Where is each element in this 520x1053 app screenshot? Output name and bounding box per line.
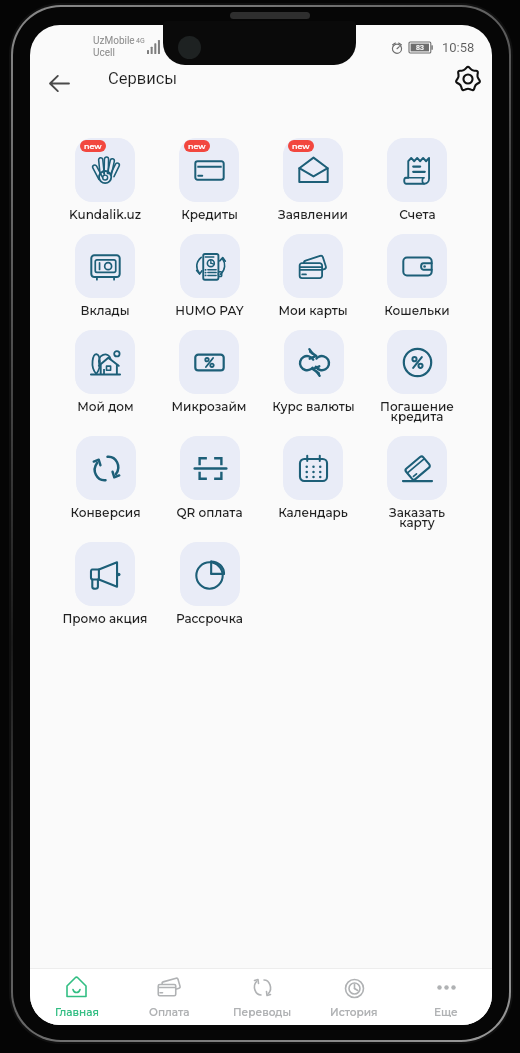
staticText: 4G bbox=[136, 37, 145, 45]
staticText: Микрозайм bbox=[171, 399, 247, 414]
button[interactable]: new bbox=[278, 138, 348, 222]
staticText: QR оплата bbox=[176, 505, 243, 520]
button[interactable]: История bbox=[308, 969, 400, 1025]
button[interactable]: Конверсия bbox=[70, 436, 141, 520]
button[interactable]: new bbox=[69, 138, 141, 222]
staticText: Заявлении bbox=[278, 207, 348, 222]
staticText: new bbox=[188, 141, 206, 151]
button[interactable]: Settings bbox=[451, 62, 485, 96]
button[interactable]: QR оплата bbox=[176, 436, 243, 520]
staticText: Kundalik.uz bbox=[69, 207, 141, 222]
button[interactable]: HUMO PAY bbox=[175, 234, 244, 318]
button[interactable]: Мой дом bbox=[75, 330, 135, 414]
staticText: Кошельки bbox=[384, 303, 450, 318]
button[interactable]: Оплата bbox=[123, 969, 216, 1025]
staticText: Главная bbox=[55, 1006, 99, 1019]
button[interactable]: Курс валюты bbox=[272, 330, 355, 414]
staticText: 10:58 bbox=[442, 40, 475, 55]
button[interactable]: Рассрочка bbox=[176, 542, 243, 626]
staticText: 83 bbox=[416, 44, 424, 52]
staticText: Промо акция bbox=[62, 611, 148, 626]
button[interactable]: Back bbox=[41, 65, 77, 101]
button[interactable]: new bbox=[179, 138, 239, 222]
staticText: UzMobile bbox=[93, 35, 135, 47]
button[interactable]: Микрозайм bbox=[171, 330, 247, 414]
staticText: Мой дом bbox=[77, 399, 134, 414]
button[interactable]: Заказать карту bbox=[387, 436, 447, 530]
staticText: Погашение кредита bbox=[380, 399, 454, 424]
staticText: Календарь bbox=[278, 505, 348, 520]
staticText: Оплата bbox=[149, 1006, 190, 1019]
staticText: Вклады bbox=[80, 303, 130, 318]
button[interactable]: Еще bbox=[400, 969, 492, 1025]
staticText: Счета bbox=[399, 207, 436, 222]
staticText: Курс валюты bbox=[272, 399, 355, 414]
staticText: Ucell bbox=[93, 47, 115, 59]
staticText: HUMO PAY bbox=[175, 303, 244, 318]
button[interactable]: Погашение кредита bbox=[380, 330, 454, 424]
staticText: Рассрочка bbox=[176, 611, 243, 626]
staticText: new bbox=[84, 141, 102, 151]
staticText: Конверсия bbox=[70, 505, 141, 520]
staticText: Кредиты bbox=[181, 207, 238, 222]
button[interactable]: Главная bbox=[30, 969, 123, 1025]
button[interactable]: Кошельки bbox=[384, 234, 450, 318]
staticText: Переводы bbox=[233, 1006, 292, 1019]
button[interactable]: Вклады bbox=[75, 234, 135, 318]
staticText: Еще bbox=[434, 1006, 458, 1019]
button[interactable]: Промо акция bbox=[62, 542, 148, 626]
staticText: Заказать карту bbox=[389, 505, 445, 530]
staticText: История bbox=[330, 1006, 378, 1019]
button[interactable]: Счета bbox=[387, 138, 447, 222]
button[interactable]: Переводы bbox=[216, 969, 308, 1025]
button[interactable]: Мои карты bbox=[278, 234, 348, 318]
staticText: new bbox=[292, 141, 310, 151]
button[interactable]: Календарь bbox=[278, 436, 348, 520]
staticText: Сервисы bbox=[108, 69, 178, 88]
staticText: Мои карты bbox=[278, 303, 348, 318]
